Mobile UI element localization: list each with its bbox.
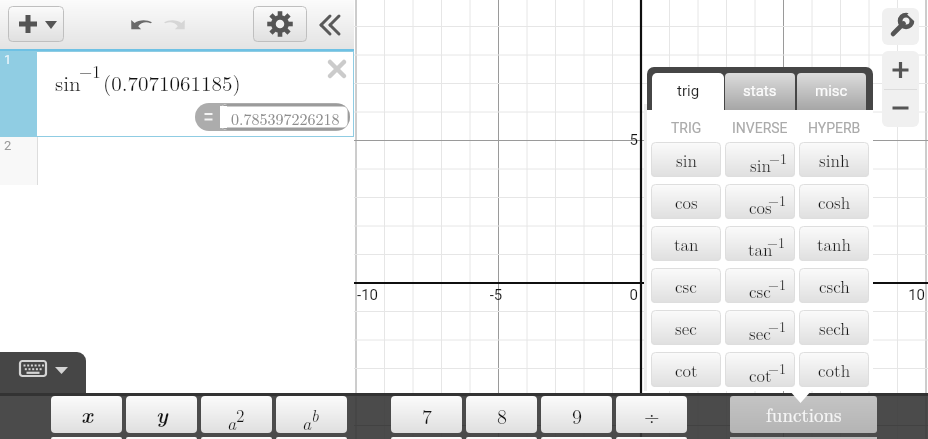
button[interactable]: stats	[725, 73, 795, 110]
staticText: 0	[578, 286, 638, 304]
staticText: −1	[768, 274, 786, 294]
staticText: sec	[749, 321, 771, 345]
button[interactable]: cosh	[799, 184, 869, 219]
staticText: -5	[466, 286, 526, 304]
staticText: 7	[422, 401, 432, 429]
button[interactable]: cos	[651, 184, 721, 219]
staticText: −1	[768, 358, 786, 378]
staticText: cos	[749, 195, 772, 219]
button[interactable]: Zoom out	[882, 89, 919, 127]
staticText: sec	[675, 316, 697, 340]
button[interactable]: Undo	[125, 11, 159, 39]
button[interactable]: misc	[797, 73, 866, 110]
staticText: csc	[749, 279, 771, 303]
button[interactable]: functions	[730, 396, 877, 433]
staticText: cos	[675, 190, 698, 214]
staticText: tanh	[817, 232, 852, 256]
staticText: sin	[676, 148, 697, 172]
button[interactable]: Settings	[253, 6, 307, 42]
staticText: 0.785397226218	[231, 107, 340, 130]
staticText: stats	[743, 82, 777, 100]
button[interactable]: Hide keyboard	[0, 352, 86, 396]
button[interactable]: ÷	[616, 396, 687, 433]
staticText: 1	[4, 52, 12, 67]
button[interactable]: cot	[651, 352, 721, 387]
button[interactable]: Redo	[157, 11, 191, 39]
staticText: functions	[766, 401, 842, 428]
staticText: (0.7071061185)	[103, 67, 241, 97]
staticText: sin	[750, 153, 771, 177]
button[interactable]: coth	[799, 352, 869, 387]
staticText: csc	[675, 274, 697, 298]
staticText: cosh	[818, 190, 851, 214]
staticText: a	[227, 410, 237, 433]
staticText: b	[311, 403, 319, 427]
button[interactable]: cot	[725, 352, 795, 387]
button[interactable]: a	[276, 396, 347, 433]
button[interactable]: Collapse panel	[316, 10, 348, 40]
staticText: HYPERB	[808, 120, 861, 136]
button[interactable]: sinh	[799, 142, 869, 177]
staticText: 2	[4, 138, 12, 153]
button[interactable]: Zoom in	[882, 51, 919, 89]
staticText: trig	[677, 82, 700, 100]
staticText: coth	[818, 358, 851, 382]
staticText: tan	[748, 237, 773, 261]
button[interactable]: tan	[725, 226, 795, 261]
button[interactable]: 8	[466, 396, 537, 433]
button[interactable]: Close	[325, 57, 349, 81]
button[interactable]: Tools	[882, 8, 919, 45]
button[interactable]: 7	[391, 396, 462, 433]
staticText: cot	[675, 358, 698, 382]
staticText: csch	[819, 274, 850, 298]
staticText: -10	[357, 286, 417, 304]
staticText: 2	[236, 403, 245, 427]
staticText: TRIG	[671, 120, 702, 136]
button[interactable]: sin	[725, 142, 795, 177]
button[interactable]: csc	[651, 268, 721, 303]
staticText: 8	[497, 401, 507, 429]
button[interactable]: a	[201, 396, 272, 433]
button[interactable]: sec	[725, 310, 795, 345]
staticText: 5	[578, 131, 638, 149]
staticText: INVERSE	[732, 120, 788, 136]
button[interactable]: csc	[725, 268, 795, 303]
button[interactable]: cos	[725, 184, 795, 219]
staticText: x	[81, 399, 93, 430]
button[interactable]: csch	[799, 268, 869, 303]
staticText: −1	[768, 190, 786, 210]
button[interactable]: sin	[651, 142, 721, 177]
staticText: −1	[768, 316, 786, 336]
staticText: cot	[749, 363, 772, 387]
staticText: −1	[767, 232, 785, 252]
staticText: −1	[79, 59, 101, 83]
button[interactable]: x	[51, 396, 122, 433]
staticText: sinh	[819, 148, 850, 172]
button[interactable]: 0.785397226218	[195, 103, 350, 131]
staticText: 9	[572, 401, 582, 429]
staticText: 10	[865, 286, 925, 304]
button[interactable]: y	[126, 396, 197, 433]
button[interactable]: sin	[37, 51, 354, 137]
button[interactable]: Add input	[8, 6, 64, 42]
staticText: y	[156, 399, 168, 430]
staticText: ÷	[644, 401, 660, 429]
staticText: sech	[819, 316, 850, 340]
button[interactable]: 9	[541, 396, 612, 433]
button[interactable]: trig	[652, 73, 724, 111]
button[interactable]: sec	[651, 310, 721, 345]
staticText: a	[302, 410, 312, 433]
button[interactable]: sech	[799, 310, 869, 345]
staticText: sin	[55, 67, 81, 97]
button[interactable]: tan	[651, 226, 721, 261]
button[interactable]: tanh	[799, 226, 869, 261]
staticText: −1	[769, 148, 787, 168]
staticText: misc	[815, 82, 848, 100]
staticText: tan	[674, 232, 699, 256]
